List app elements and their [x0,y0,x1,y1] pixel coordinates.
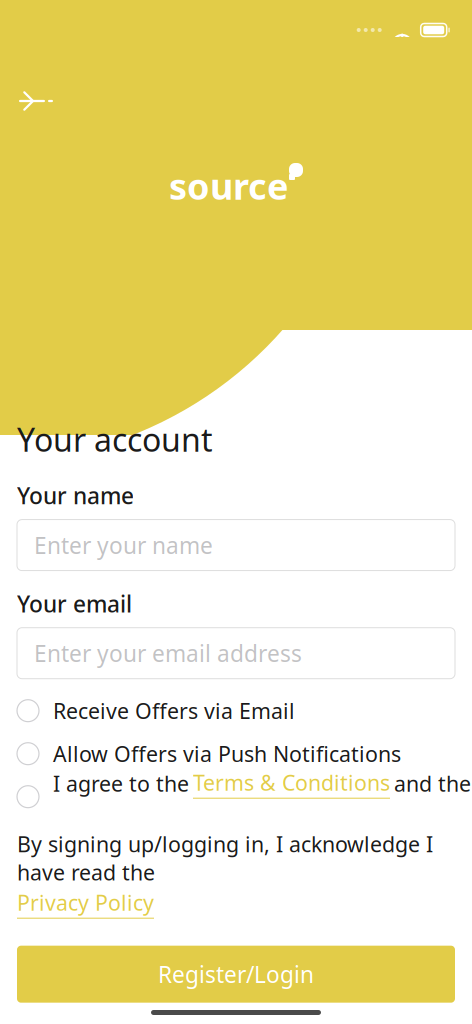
staticText: Allow Offers via Push Notifications [53,739,401,768]
staticText: Enter your name [34,530,213,560]
staticText: Enter your email address [34,638,302,668]
button[interactable]: Enter your name [17,520,455,571]
staticText: Receive Offers via Email [53,696,295,725]
staticText: Register/Login [158,959,314,989]
staticText: I agree to the [53,769,189,798]
button[interactable]: Register/Login [17,946,455,1003]
button[interactable]: Back [0,78,74,124]
button[interactable]: Receive Offers via Email [17,696,455,726]
button[interactable]: Privacy Policy [17,888,154,919]
staticText: Your name [17,480,134,511]
staticText: Terms & Conditions [193,768,390,797]
staticText: Your email [17,589,132,619]
staticText: and the [394,769,471,798]
button[interactable]: I agree to the [17,782,455,812]
staticText: Privacy Policy [17,888,154,917]
button[interactable]: Allow Offers via Push Notifications [17,739,455,769]
staticText: source [169,162,288,210]
staticText: Your account [17,418,213,460]
staticText: By signing up/logging in, I acknowledge … [17,830,433,886]
button[interactable]: Enter your email address [17,628,455,679]
